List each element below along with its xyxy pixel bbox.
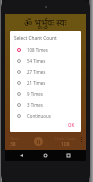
staticText: 108 Times	[27, 47, 48, 53]
staticText: 9 Times	[27, 91, 43, 97]
staticText: 54 Times	[27, 58, 46, 64]
button[interactable]: 27 Times	[10, 66, 81, 77]
staticText: OK	[68, 122, 75, 128]
button[interactable]: Recents	[63, 150, 74, 161]
button[interactable]: 108 Times	[10, 44, 81, 55]
staticText: Turn	[10, 136, 19, 141]
button[interactable]: 21 Times	[10, 77, 81, 88]
button[interactable]: More options	[81, 137, 82, 142]
staticText: 27 Times	[27, 69, 46, 75]
button[interactable]: Pause	[34, 137, 43, 146]
staticText: Select Chant Count	[14, 35, 57, 42]
button[interactable]: 54 Times	[10, 55, 81, 66]
button[interactable]: Back	[16, 150, 27, 161]
staticText: Continuous	[27, 113, 51, 119]
staticText: 38	[10, 141, 16, 148]
button[interactable]: Home	[40, 150, 51, 161]
staticText: 21 Times	[27, 80, 46, 86]
button[interactable]: 3 Times	[10, 99, 81, 110]
button[interactable]: Continuous	[10, 110, 81, 121]
staticText: ॐ भूर्भुवः स्वः	[24, 16, 67, 28]
button[interactable]: OK	[65, 121, 78, 129]
button[interactable]: 9 Times	[10, 88, 81, 99]
staticText: 3 Times	[27, 102, 43, 108]
staticText: Chant Count	[54, 136, 76, 141]
staticText: 108	[61, 141, 70, 148]
